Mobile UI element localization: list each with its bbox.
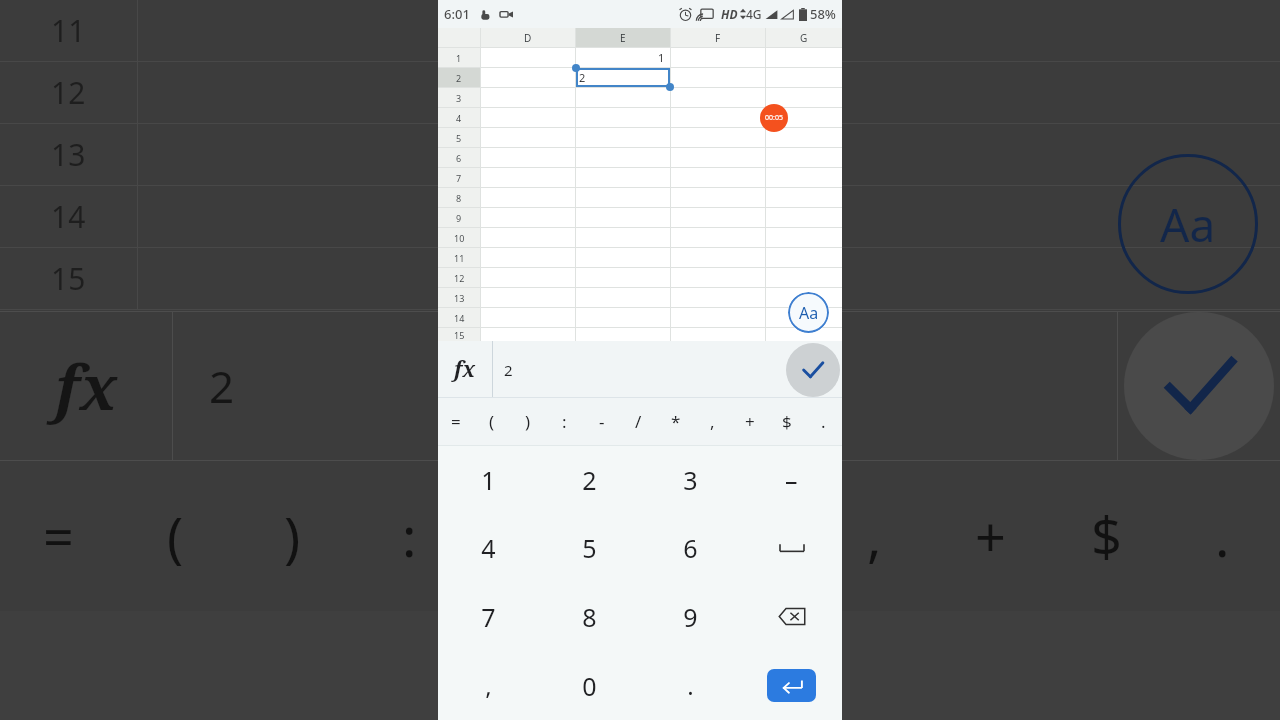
button[interactable]: Space — [741, 514, 842, 582]
staticText: 12 — [51, 72, 86, 113]
staticText: ( — [489, 410, 495, 433]
staticText: . — [1215, 499, 1230, 573]
button[interactable]: Backspace — [741, 582, 842, 651]
button[interactable]: 0 — [539, 651, 640, 720]
staticText: , — [867, 499, 882, 573]
staticText: + — [745, 410, 755, 433]
staticText: 12 — [454, 272, 465, 284]
button[interactable]: 2 — [539, 446, 640, 514]
button[interactable]: 8 — [539, 582, 640, 651]
button[interactable]: – — [741, 446, 842, 514]
button[interactable]: 5 — [539, 514, 640, 582]
button[interactable]: 6 — [640, 514, 741, 582]
staticText: = — [43, 499, 74, 573]
button[interactable]: , — [694, 398, 731, 445]
staticText: $ — [1091, 499, 1122, 573]
button[interactable]: Functions — [438, 341, 492, 398]
staticText: 3 — [456, 92, 462, 104]
staticText: / — [635, 410, 642, 433]
button[interactable]: 00:05 — [760, 104, 788, 132]
staticText: 7 — [456, 172, 462, 184]
staticText: 6 — [456, 152, 462, 164]
staticText: 6 — [683, 531, 698, 565]
staticText: 5 — [456, 132, 462, 144]
staticText: 4 — [481, 531, 496, 565]
staticText: : — [562, 410, 567, 433]
staticText: 0 — [582, 669, 597, 703]
button[interactable]: $ — [768, 398, 805, 445]
staticText: ) — [284, 499, 301, 573]
button[interactable]: - — [583, 398, 620, 445]
button[interactable]: Text formatting — [788, 292, 829, 333]
staticText: G — [800, 31, 808, 45]
staticText: 10 — [454, 232, 465, 244]
staticText: 11 — [51, 10, 86, 51]
staticText: fx — [454, 355, 476, 384]
staticText: : — [402, 499, 417, 573]
staticText: 58% — [810, 5, 836, 23]
button[interactable]: 7 — [438, 582, 539, 651]
button[interactable]: 9 — [640, 582, 741, 651]
staticText: = — [451, 410, 461, 433]
staticText: 11 — [454, 252, 465, 264]
staticText: 14 — [454, 312, 465, 324]
staticText: F — [715, 31, 721, 45]
button[interactable]: ( — [474, 398, 510, 445]
staticText: 9 — [683, 600, 698, 634]
staticText: 2 — [504, 360, 513, 380]
button[interactable]: . — [805, 398, 842, 445]
button[interactable]: . — [640, 651, 741, 720]
button[interactable]: + — [731, 398, 768, 445]
staticText: 3 — [683, 463, 698, 497]
button[interactable]: Accept — [784, 341, 842, 398]
staticText: 2 — [579, 70, 586, 85]
staticText: 4G — [746, 6, 762, 22]
staticText: fx — [55, 344, 118, 428]
staticText: D — [524, 31, 532, 45]
button[interactable]: = — [438, 398, 474, 445]
staticText: 14 — [51, 196, 86, 237]
button[interactable]: 1 — [438, 446, 539, 514]
staticText: 1 — [456, 52, 462, 64]
staticText: - — [599, 410, 605, 433]
staticText: 2 — [582, 463, 597, 497]
staticText: 8 — [582, 600, 597, 634]
staticText: 15 — [51, 258, 86, 299]
staticText: 7 — [481, 600, 496, 634]
button[interactable]: 3 — [640, 446, 741, 514]
staticText: 1 — [481, 463, 496, 497]
staticText: , — [710, 410, 715, 433]
staticText: + — [975, 499, 1006, 573]
staticText: * — [671, 410, 681, 433]
staticText: ) — [525, 410, 531, 433]
staticText: 8 — [456, 192, 462, 204]
staticText: – — [785, 463, 798, 497]
staticText: 2 — [209, 356, 235, 416]
staticText: 9 — [456, 212, 462, 224]
button[interactable]: * — [657, 398, 694, 445]
button[interactable]: , — [438, 651, 539, 720]
staticText: 1 — [658, 50, 665, 65]
button[interactable]: / — [620, 398, 657, 445]
staticText: 00:05 — [765, 113, 783, 123]
staticText: . — [821, 410, 826, 433]
button[interactable]: Enter — [741, 651, 842, 720]
staticText: 6:01 — [444, 5, 470, 23]
button[interactable]: 2 — [493, 341, 784, 398]
button[interactable]: : — [546, 398, 583, 445]
staticText: Aa — [1160, 193, 1216, 256]
button[interactable]: ) — [510, 398, 546, 445]
staticText: Aa — [799, 302, 819, 324]
staticText: 15 — [454, 329, 465, 341]
staticText: E — [620, 31, 626, 45]
staticText: $ — [782, 410, 792, 433]
staticText: , — [485, 669, 492, 702]
staticText: 13 — [51, 134, 86, 175]
staticText: 2 — [456, 72, 462, 84]
staticText: ( — [167, 499, 184, 573]
button[interactable]: 4 — [438, 514, 539, 582]
staticText: . — [687, 669, 694, 702]
